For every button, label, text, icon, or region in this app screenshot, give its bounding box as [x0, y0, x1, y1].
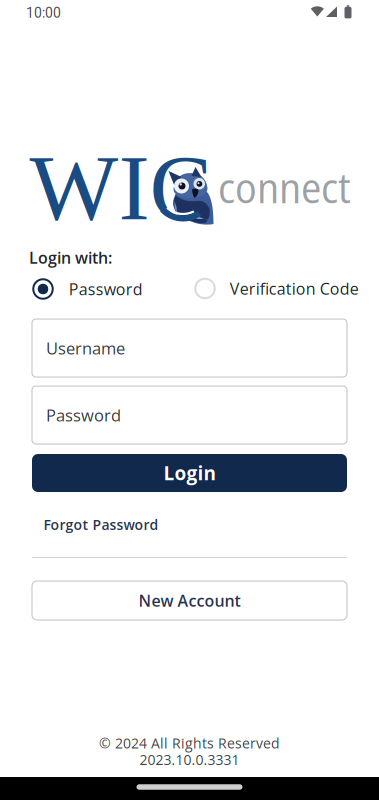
button[interactable]: Verification Code [195, 278, 359, 299]
button[interactable]: Login [32, 454, 347, 492]
staticText: Password [69, 278, 143, 300]
staticText: 10:00 [26, 5, 61, 21]
button[interactable]: Forgot Password [41, 511, 160, 538]
staticText: Login with: [29, 247, 112, 268]
staticText: 2023.10.0.3331 [139, 750, 239, 769]
staticText: Password [46, 404, 121, 426]
button[interactable]: New Account [32, 581, 347, 620]
staticText: Login [163, 460, 215, 486]
staticText: © 2024 All Rights Reserved [99, 733, 280, 753]
staticText: Verification Code [230, 278, 359, 299]
staticText: Forgot Password [43, 515, 158, 534]
button[interactable]: Username [32, 319, 347, 377]
staticText: Username [46, 337, 125, 359]
staticText: connect [218, 158, 351, 216]
button[interactable]: Password [33, 278, 143, 300]
staticText: New Account [138, 590, 240, 611]
staticText: WIC [29, 135, 212, 240]
button[interactable]: Password [32, 386, 347, 444]
